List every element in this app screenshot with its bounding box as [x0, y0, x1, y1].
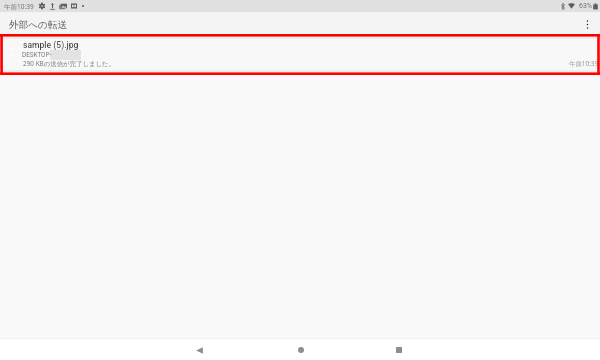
- staticText: 290 KBの送信が完了しました。: [23, 59, 115, 68]
- button[interactable]: sample (5).jpg: [3, 37, 597, 72]
- button[interactable]: Recents: [350, 339, 449, 360]
- staticText: 63%: [579, 2, 592, 10]
- button[interactable]: More options: [576, 13, 598, 36]
- staticText: 午前10:39: [569, 59, 599, 68]
- button[interactable]: Home: [251, 339, 350, 360]
- staticText: 午前10:39: [4, 2, 34, 11]
- staticText: DESKTOP-: [22, 51, 52, 58]
- staticText: sample (5).jpg: [23, 40, 79, 50]
- staticText: 外部への転送: [9, 19, 68, 31]
- button[interactable]: Back: [152, 339, 251, 360]
